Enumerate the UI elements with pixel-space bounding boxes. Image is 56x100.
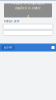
staticText: Pressure or temperature (11, 2, 45, 5)
staticText: classified in a table (15, 6, 41, 10)
staticText: 4 (27, 14, 29, 19)
staticText: Range year (4, 19, 19, 23)
button[interactable]: Submit (1, 45, 14, 50)
staticText: Submit (3, 46, 12, 49)
